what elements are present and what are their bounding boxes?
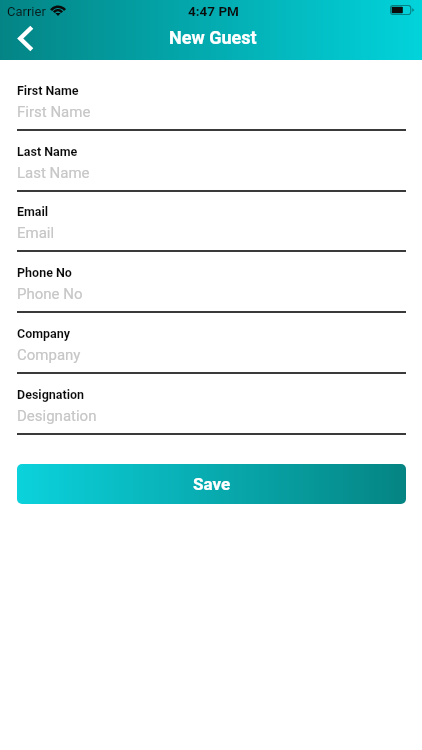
staticText: Last Name [17,164,90,182]
staticText: Carrier [7,4,46,19]
staticText: Save [193,474,231,494]
staticText: First Name [17,83,79,98]
staticText: Phone No [17,285,83,303]
button[interactable]: Back [9,21,43,55]
staticText: 4:47 PM [188,3,239,19]
staticText: Company [17,346,81,364]
staticText: First Name [17,103,91,121]
staticText: Company [17,326,71,341]
button[interactable]: Email [17,204,406,252]
staticText: Last Name [17,144,78,159]
staticText: Designation [17,387,85,402]
button[interactable]: Last Name [17,144,406,192]
staticText: Email [17,204,49,219]
button[interactable]: Phone No [17,265,406,313]
button[interactable]: First Name [17,83,406,131]
button[interactable]: Company [17,326,406,374]
button[interactable]: Designation [17,387,406,435]
staticText: Designation [17,407,97,425]
staticText: Phone No [17,265,72,280]
staticText: New Guest [169,27,257,48]
button[interactable]: Save [17,464,406,504]
staticText: Email [17,224,55,242]
